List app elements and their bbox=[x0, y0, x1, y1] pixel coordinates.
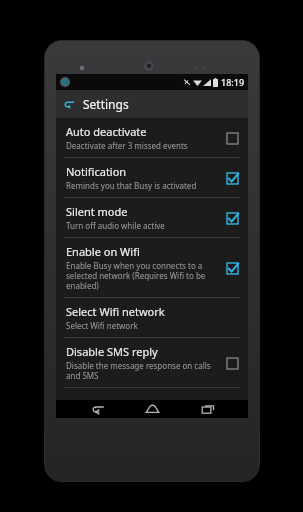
staticText: Auto deactivate bbox=[66, 124, 147, 139]
staticText: Select Wifi network bbox=[66, 304, 165, 319]
button[interactable]: Notification bbox=[56, 158, 248, 197]
button[interactable]: Checked bbox=[224, 260, 240, 276]
button[interactable]: Auto deactivate bbox=[56, 118, 248, 157]
staticText: 18:19 bbox=[221, 76, 245, 88]
button[interactable]: Back bbox=[82, 400, 112, 418]
button[interactable]: Unchecked bbox=[224, 130, 240, 146]
button[interactable]: Navigate up bbox=[62, 97, 76, 111]
staticText: Notification bbox=[66, 164, 127, 179]
button[interactable]: Unchecked bbox=[224, 355, 240, 371]
button[interactable]: Checked bbox=[224, 170, 240, 186]
staticText: Turn off audio while active bbox=[66, 220, 165, 231]
staticText: Settings bbox=[83, 96, 129, 112]
staticText: Silent mode bbox=[66, 204, 128, 219]
staticText: Enable on Wifi bbox=[66, 244, 140, 259]
button[interactable]: Enable on Wifi bbox=[56, 238, 248, 297]
staticText: Disable SMS reply bbox=[66, 344, 158, 359]
button[interactable]: Disable SMS reply bbox=[56, 338, 248, 387]
button[interactable]: Silent mode bbox=[56, 198, 248, 237]
staticText: Reminds you that Busy is activated bbox=[66, 180, 197, 191]
staticText: Deactivate after 3 missed events bbox=[66, 140, 188, 151]
staticText: Select Wifi network bbox=[66, 320, 138, 331]
button[interactable]: Checked bbox=[224, 210, 240, 226]
button[interactable]: Navigate up bbox=[56, 90, 248, 118]
staticText: Disable the message response on calls an… bbox=[66, 360, 218, 381]
button[interactable]: Recent apps bbox=[193, 400, 223, 418]
button[interactable]: Select Wifi network bbox=[56, 298, 248, 337]
staticText: Enable Busy when you connects to a selec… bbox=[66, 260, 218, 291]
button[interactable]: Home bbox=[137, 400, 167, 418]
